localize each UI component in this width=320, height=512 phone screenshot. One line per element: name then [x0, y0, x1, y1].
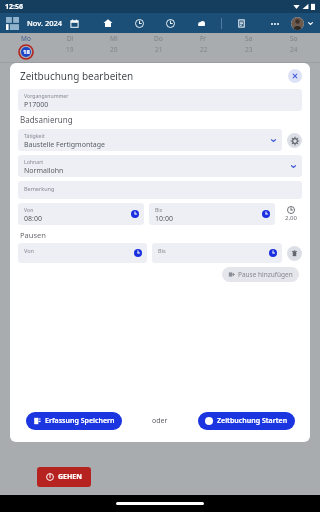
staticText: 18	[23, 48, 30, 56]
staticText: 19	[66, 45, 74, 54]
button[interactable]: Home	[102, 17, 114, 29]
button[interactable]: Zeitbuchung Starten	[198, 412, 295, 430]
staticText: P17000	[24, 100, 49, 110]
staticText: So	[290, 34, 298, 43]
button[interactable]: Bis	[152, 243, 282, 263]
button[interactable]: Settings	[287, 133, 302, 148]
staticText: Zeitbuchung bearbeiten	[20, 69, 134, 83]
staticText: Bemerkung	[24, 185, 55, 192]
staticText: Normallohn	[24, 166, 64, 176]
staticText: Pausen	[20, 230, 46, 240]
button[interactable]: More options	[269, 18, 280, 29]
button[interactable]: Tätigkeit	[18, 129, 282, 151]
staticText: Von	[24, 206, 34, 213]
staticText: 10:00	[155, 214, 173, 224]
staticText: Mo	[21, 34, 31, 43]
button[interactable]: Profile	[291, 17, 304, 30]
button[interactable]: Lohnart	[18, 155, 302, 177]
button[interactable]: Bis	[149, 203, 275, 225]
button[interactable]: Von	[18, 243, 147, 263]
staticText: oder	[152, 416, 168, 426]
staticText: 24	[290, 45, 298, 54]
staticText: Nov. 2024	[27, 18, 63, 28]
button[interactable]: Documents	[236, 18, 247, 29]
button[interactable]: GEHEN	[37, 467, 91, 487]
button[interactable]: Erfassung Speichern	[26, 412, 122, 430]
staticText: 22	[200, 45, 208, 54]
button[interactable]: Pause hinzufügen	[228, 270, 293, 279]
staticText: 21	[155, 45, 163, 54]
button[interactable]: Time	[134, 18, 145, 29]
staticText: Di	[67, 34, 74, 43]
staticText: Mi	[110, 34, 118, 43]
staticText: Sa	[245, 34, 253, 43]
staticText: 23	[245, 45, 253, 54]
staticText: Bis	[158, 247, 166, 254]
button[interactable]: Delete	[287, 246, 302, 261]
staticText: Baustelle Fertigmontage	[24, 140, 105, 150]
staticText: Badsanierung	[20, 114, 73, 125]
button[interactable]: Cloud	[196, 18, 207, 29]
button[interactable]: History	[165, 18, 176, 29]
staticText: Von	[24, 247, 34, 254]
button[interactable]: Close	[288, 69, 302, 83]
staticText: Tätigkeit	[24, 132, 45, 139]
staticText: 08:00	[24, 214, 42, 224]
staticText: Bis	[155, 206, 163, 213]
button[interactable]: Calendar	[69, 18, 80, 29]
staticText: Erfassung Speichern	[45, 416, 115, 426]
staticText: GEHEN	[58, 472, 82, 482]
button[interactable]: Von	[18, 203, 144, 225]
button[interactable]: Logo	[6, 17, 19, 30]
staticText: Vorgangsnummer	[24, 92, 69, 99]
staticText: 2,00	[285, 214, 297, 222]
staticText: Fr	[200, 34, 207, 43]
staticText: Lohnart	[24, 158, 44, 165]
staticText: Do	[154, 34, 163, 43]
staticText: 12:56	[5, 2, 23, 12]
staticText: Pause hinzufügen	[238, 270, 293, 279]
staticText: 20	[110, 45, 118, 54]
staticText: Zeitbuchung Starten	[217, 416, 288, 426]
